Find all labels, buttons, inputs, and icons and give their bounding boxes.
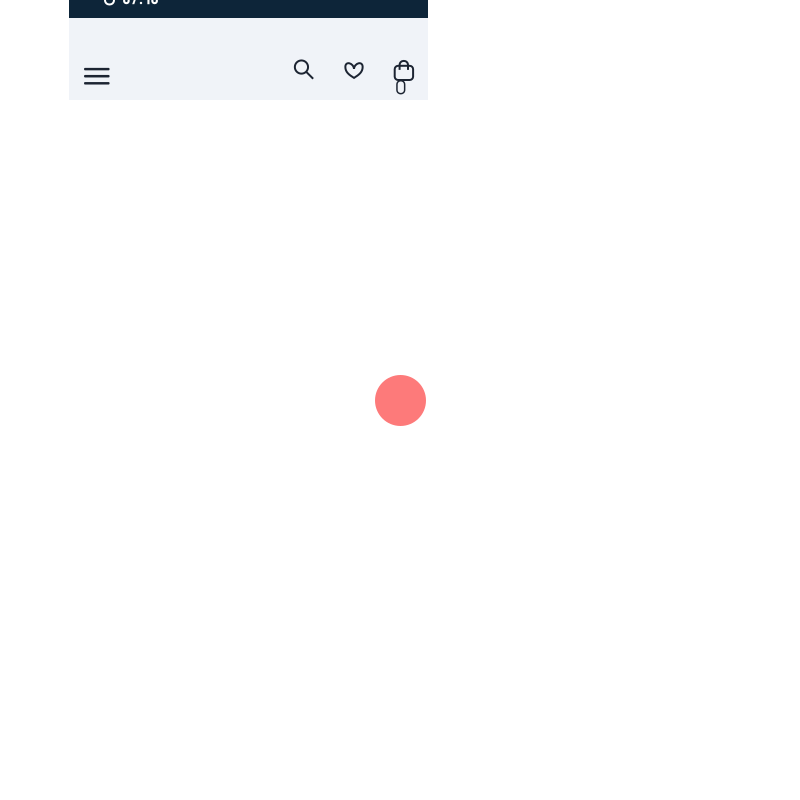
button[interactable]: Cart, 0 items bbox=[384, 57, 424, 103]
button[interactable]: Search bbox=[284, 48, 324, 92]
button[interactable]: Menu bbox=[75, 54, 119, 98]
button[interactable]: Wishlist bbox=[334, 48, 374, 92]
